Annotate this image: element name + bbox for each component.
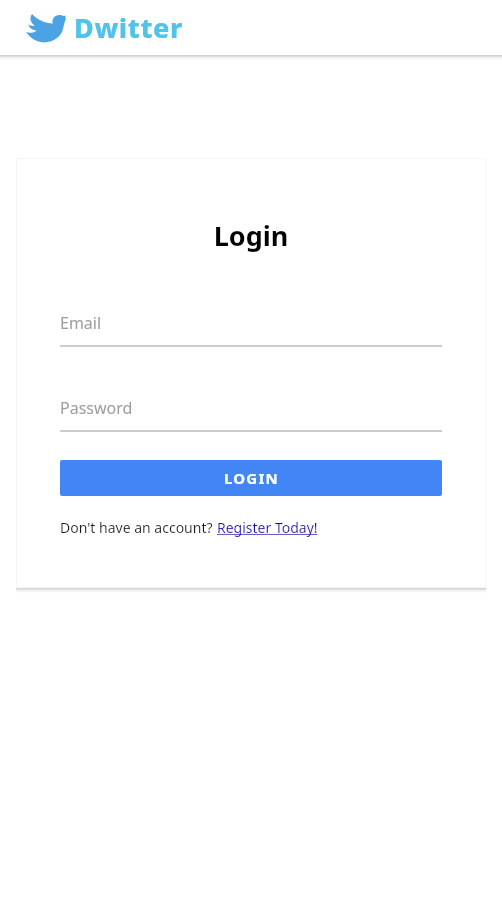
staticText: Password <box>60 397 133 419</box>
staticText: Dwitter <box>74 9 183 46</box>
button[interactable]: Register Today! <box>217 518 318 537</box>
button[interactable]: Email <box>60 312 442 347</box>
staticText: Register Today! <box>217 518 318 537</box>
button[interactable]: LOGIN <box>60 460 442 496</box>
staticText: Login <box>16 217 486 254</box>
button[interactable]: Password <box>60 397 442 432</box>
staticText: Don't have an account? <box>60 518 217 537</box>
staticText: Email <box>60 312 102 334</box>
staticText: LOGIN <box>224 468 279 488</box>
